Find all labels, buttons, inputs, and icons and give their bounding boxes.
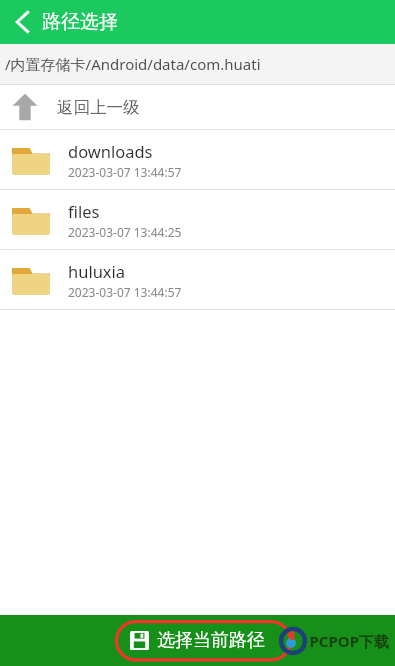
button[interactable]: huluxia (0, 250, 395, 309)
button[interactable]: files (0, 190, 395, 249)
staticText: PCPOP下载 (309, 631, 389, 651)
staticText: /内置存储卡/Android/data/com.huati (5, 54, 261, 74)
button[interactable]: downloads (0, 130, 395, 189)
staticText: 2023-03-07 13:44:25 (68, 224, 182, 240)
button[interactable]: 选择当前路径 (0, 615, 395, 666)
staticText: 选择当前路径 (157, 629, 265, 652)
staticText: files (68, 200, 100, 222)
staticText: 2023-03-07 13:44:57 (68, 164, 182, 180)
staticText: 2023-03-07 13:44:57 (68, 284, 182, 300)
button[interactable]: 返回上一级 (0, 85, 395, 129)
staticText: huluxia (68, 260, 126, 282)
staticText: 路径选择 (42, 10, 118, 34)
button[interactable]: /内置存储卡/Android/data/com.huati (0, 44, 395, 84)
staticText: downloads (68, 140, 153, 162)
button[interactable]: Back (4, 3, 42, 41)
staticText: 返回上一级 (57, 97, 140, 118)
